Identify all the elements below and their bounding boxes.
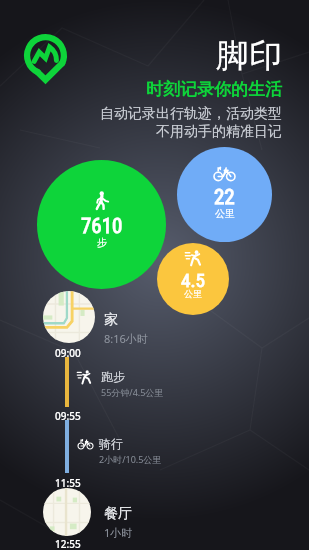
- staticText: 时刻记录你的生活: [146, 79, 282, 100]
- button[interactable]: 家: [104, 311, 148, 346]
- button[interactable]: Running distance: [157, 243, 229, 315]
- button[interactable]: Map thumbnail: [43, 291, 95, 343]
- staticText: 自动记录出行轨迹，活动类型: [100, 105, 282, 123]
- staticText: 脚印: [216, 35, 282, 77]
- staticText: 步: [97, 236, 107, 249]
- staticText: 22: [214, 185, 235, 210]
- button[interactable]: 骑行: [99, 436, 162, 465]
- staticText: 55分钟/4.5公里: [101, 386, 164, 398]
- staticText: 09:00: [55, 346, 81, 359]
- button[interactable]: Map thumbnail: [43, 488, 91, 536]
- staticText: 餐厅: [104, 505, 132, 523]
- staticText: 家: [104, 311, 118, 329]
- staticText: 不用动手的精准日记: [156, 123, 282, 141]
- staticText: 7610: [81, 214, 123, 239]
- staticText: 骑行: [99, 436, 123, 451]
- staticText: 1小时: [104, 525, 133, 540]
- button[interactable]: 跑步: [101, 369, 164, 398]
- button[interactable]: 餐厅: [104, 505, 133, 540]
- staticText: 09:55: [55, 409, 81, 422]
- staticText: 公里: [184, 288, 202, 299]
- staticText: 12:55: [55, 537, 81, 550]
- staticText: 2小时/10.5公里: [99, 453, 162, 465]
- button[interactable]: Cycling distance: [177, 147, 272, 242]
- staticText: 跑步: [101, 369, 125, 384]
- staticText: 4.5: [181, 269, 205, 291]
- other: App logo: [24, 34, 67, 83]
- staticText: 11:55: [55, 476, 81, 489]
- button[interactable]: Steps: [37, 160, 166, 289]
- staticText: 8:16小时: [104, 331, 148, 346]
- staticText: 公里: [215, 207, 235, 220]
